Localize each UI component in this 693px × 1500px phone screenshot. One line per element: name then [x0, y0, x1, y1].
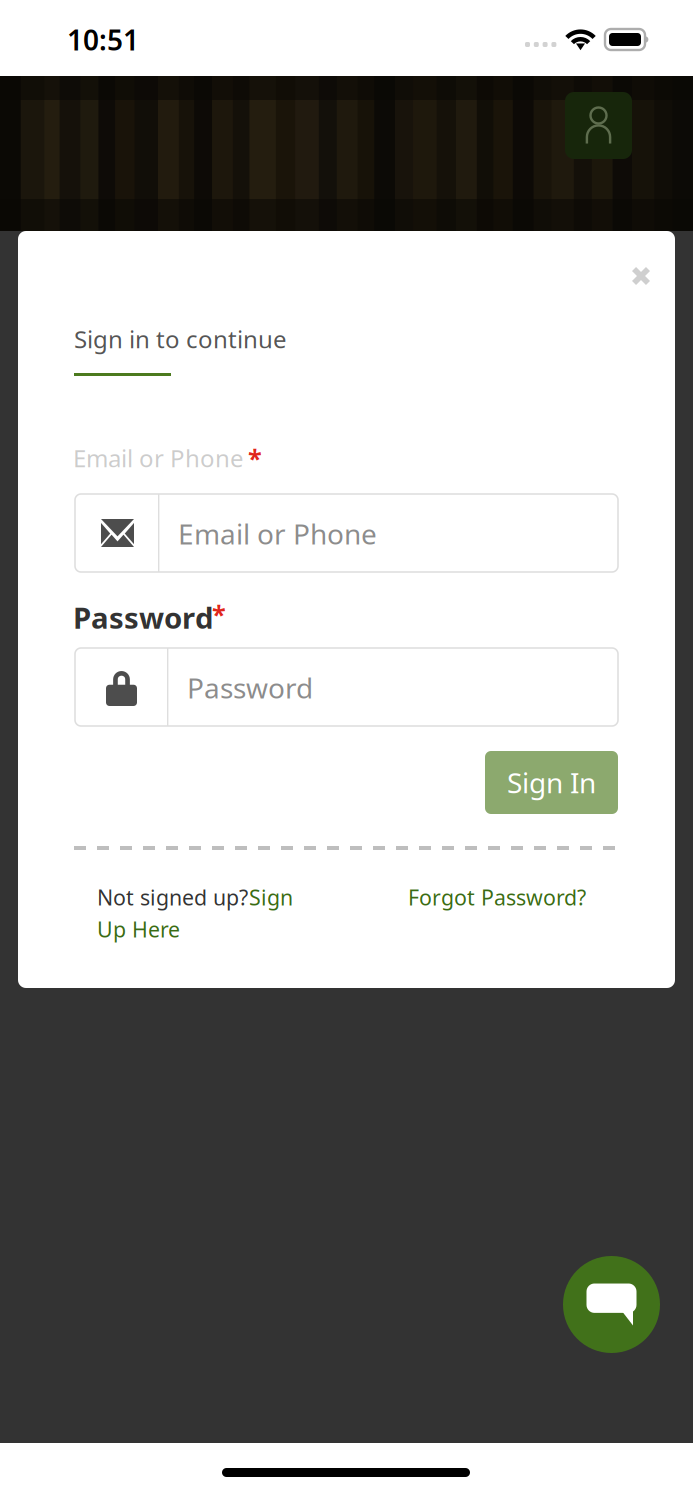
staticText: Password: [187, 669, 313, 706]
button[interactable]: Up Here: [97, 915, 180, 943]
staticText: Password: [73, 598, 214, 637]
staticText: Up Here: [97, 915, 180, 943]
staticText: *: [212, 597, 226, 631]
button[interactable]: Forgot Password?: [408, 883, 586, 911]
button[interactable]: Sign In: [485, 751, 618, 814]
button[interactable]: Close: [612, 247, 670, 305]
staticText: Email or Phone: [73, 442, 244, 474]
staticText: Email or Phone: [178, 515, 377, 552]
button[interactable]: Sign: [249, 883, 293, 911]
button[interactable]: Chat: [563, 1256, 660, 1353]
staticText: *: [248, 441, 262, 475]
button[interactable]: Password: [75, 648, 618, 726]
staticText: Sign In: [507, 764, 596, 801]
staticText: Forgot Password?: [408, 883, 586, 911]
button[interactable]: Account: [565, 92, 632, 159]
staticText: Sign: [249, 883, 293, 911]
button[interactable]: Email or Phone: [75, 494, 618, 572]
staticText: 10:51: [67, 21, 139, 58]
staticText: Not signed up?: [97, 883, 248, 911]
staticText: Sign in to continue: [74, 323, 287, 355]
